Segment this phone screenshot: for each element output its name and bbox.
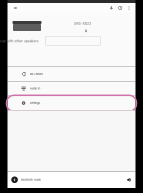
button[interactable]: Settings (7, 96, 135, 110)
staticText: Group with other speakers (0, 33, 143, 49)
button[interactable]: Help (115, 3, 125, 13)
button[interactable]: Back (11, 3, 20, 13)
staticText: Settings (30, 95, 81, 111)
staticText: Bluetooth Audio (21, 172, 121, 188)
button[interactable]: Audio In (7, 81, 135, 96)
staticText: Audio In (30, 80, 82, 97)
button[interactable]: More options (125, 3, 133, 13)
button[interactable]: My Library (7, 67, 135, 81)
button[interactable]: Bluetooth Audio (11, 176, 121, 183)
staticText: SRS-XB23 (74, 15, 141, 31)
button[interactable]: Voice search (107, 3, 115, 13)
staticText: My Library (30, 66, 96, 82)
button[interactable]: Volume (125, 175, 133, 185)
button[interactable]: Group with other speakers (45, 36, 100, 45)
